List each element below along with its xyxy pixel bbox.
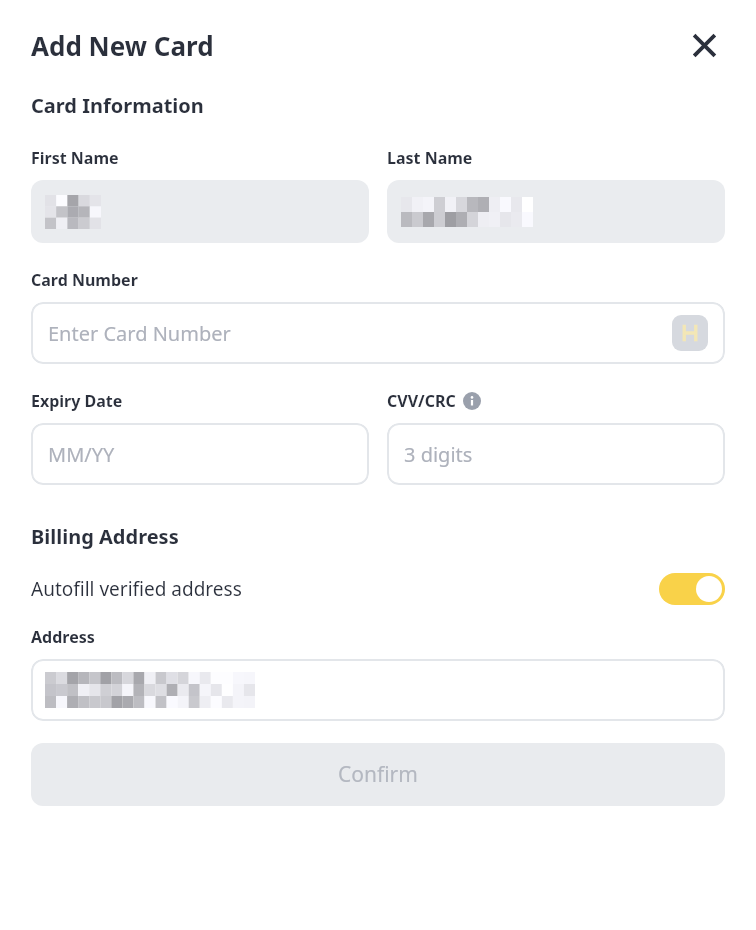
button[interactable] [31,180,369,243]
button[interactable] [387,180,725,243]
staticText: Card Information [31,92,204,119]
staticText: First Name [31,147,119,169]
button[interactable] [31,659,725,721]
staticText: Enter Card Number [48,320,231,347]
staticText: CVV/CRC [387,390,456,412]
staticText: Confirm [338,760,418,789]
button[interactable]: Autofill verified address [31,572,725,606]
staticText: Billing Address [31,523,179,550]
staticText: 3 digits [404,441,473,468]
staticText: Address [31,626,95,648]
staticText: MM/YY [48,441,115,468]
staticText: Autofill verified address [31,576,242,602]
staticText: Last Name [387,147,473,169]
staticText: Add New Card [31,28,214,63]
staticText: Card Number [31,269,138,291]
button[interactable]: Close [683,24,725,66]
staticText: Expiry Date [31,390,123,412]
button[interactable]: Confirm [31,743,725,806]
button[interactable]: CVV information [463,392,481,410]
button[interactable]: 3 digits [387,423,725,485]
button[interactable]: MM/YY [31,423,369,485]
button[interactable]: Enter Card Number [31,302,725,364]
